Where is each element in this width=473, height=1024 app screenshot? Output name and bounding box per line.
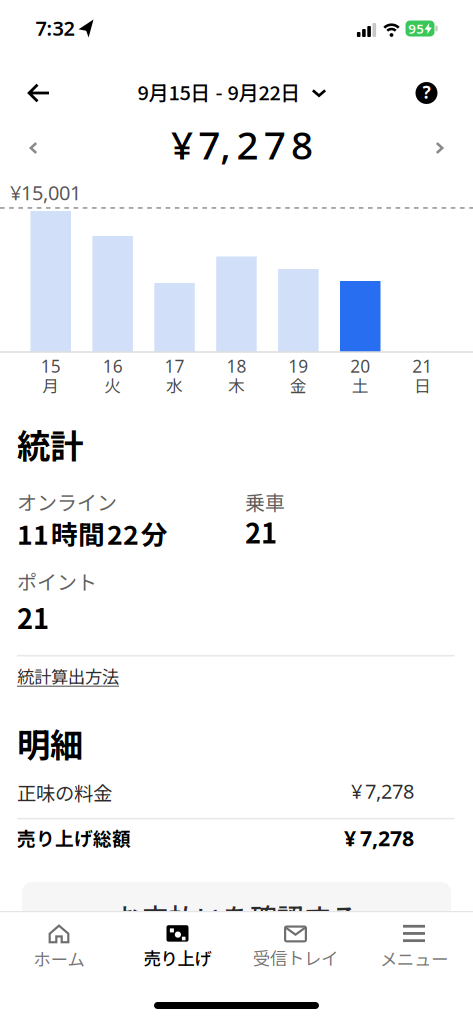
staticText: 7:32: [35, 15, 74, 41]
staticText: ¥ 7,278: [351, 778, 414, 804]
staticText: 水: [166, 373, 183, 397]
button[interactable]: 統計算出方法: [17, 663, 119, 689]
button[interactable]: 前の週: [21, 134, 45, 162]
staticText: 月: [42, 373, 59, 397]
staticText: 9月15日 - 9月22日: [137, 77, 300, 106]
button[interactable]: 売り上げ: [127, 918, 227, 974]
staticText: 正味の料金: [17, 778, 112, 806]
button[interactable]: 戻る: [17, 73, 60, 112]
staticText: ?: [422, 80, 430, 103]
staticText: 17: [165, 354, 185, 377]
staticText: 21: [17, 597, 49, 637]
staticText: ¥: [171, 119, 193, 170]
staticText: ¥ 7,278: [344, 824, 414, 852]
staticText: 7: [264, 119, 286, 170]
button[interactable]: 9月18日: [216, 256, 257, 352]
staticText: 金: [290, 373, 307, 397]
staticText: 売り上げ総額: [17, 824, 131, 851]
button[interactable]: 次の週: [427, 134, 451, 162]
button[interactable]: ホーム: [9, 918, 109, 974]
staticText: ホーム: [33, 946, 84, 971]
staticText: 火: [104, 373, 121, 397]
button[interactable]: メニュー: [364, 918, 464, 974]
staticText: 18: [226, 354, 246, 377]
staticText: 受信トレイ: [253, 945, 338, 970]
staticText: 日: [414, 373, 431, 397]
staticText: 7,: [198, 119, 231, 170]
staticText: 土: [352, 373, 369, 397]
button[interactable]: 9月15日 - 9月22日: [137, 77, 326, 106]
staticText: 21: [412, 354, 432, 377]
staticText: 統計: [17, 420, 83, 468]
staticText: 15: [41, 354, 61, 377]
staticText: 16: [103, 354, 123, 377]
staticText: 21: [245, 512, 277, 551]
button[interactable]: 9月15日: [30, 211, 71, 352]
staticText: 乗車: [245, 487, 285, 516]
button[interactable]: お支払いを確認する: [22, 882, 451, 946]
staticText: 19: [288, 354, 308, 377]
staticText: 売り上げ: [143, 945, 211, 970]
button[interactable]: 9月20日: [340, 281, 380, 352]
button[interactable]: ヘルプ: [411, 78, 441, 108]
staticText: 95: [408, 20, 424, 37]
staticText: ポイント: [17, 566, 97, 595]
button[interactable]: 受信トレイ: [240, 918, 350, 974]
staticText: 統計算出方法: [17, 663, 119, 689]
staticText: 8: [291, 119, 313, 170]
staticText: お支払いを確認する: [115, 897, 358, 935]
staticText: 2: [236, 119, 258, 170]
staticText: メニュー: [380, 946, 448, 971]
staticText: 20: [350, 354, 370, 377]
staticText: 木: [228, 373, 245, 397]
staticText: 明細: [17, 719, 83, 767]
staticText: オンライン: [17, 487, 117, 516]
staticText: ¥15,001: [10, 179, 81, 206]
staticText: 11 時間 22 分: [17, 514, 168, 552]
